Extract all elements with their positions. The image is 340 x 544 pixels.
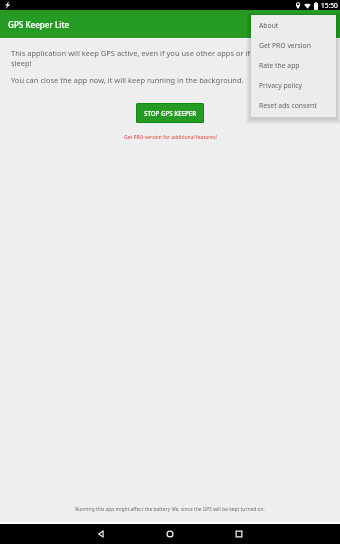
button[interactable]: Recent apps: [230, 525, 248, 543]
button[interactable]: Get PRO version: [251, 35, 336, 55]
staticText: Reset ads consent: [259, 101, 317, 110]
staticText: Rate the app: [259, 61, 300, 70]
button[interactable]: Back: [92, 525, 110, 543]
staticText: This application will keep GPS active, e…: [11, 48, 266, 69]
button[interactable]: Rate the app: [251, 55, 336, 75]
button[interactable]: Get PRO version for additional features!: [124, 134, 217, 141]
button[interactable]: Home: [161, 525, 179, 543]
staticText: Get PRO version: [259, 41, 311, 50]
button[interactable]: Privacy policy: [251, 75, 336, 95]
staticText: Running this app might affect the batter…: [75, 506, 265, 513]
button[interactable]: STOP GPS KEEPER: [136, 103, 204, 123]
staticText: About: [259, 21, 279, 30]
staticText: You can close the app now, it will keep …: [11, 75, 244, 85]
staticText: Privacy policy: [259, 81, 302, 90]
button[interactable]: Reset ads consent: [251, 95, 336, 115]
staticText: 15:50: [321, 1, 338, 10]
staticText: STOP GPS KEEPER: [144, 109, 197, 117]
button[interactable]: About: [251, 15, 336, 35]
staticText: GPS Keeper Lite: [8, 19, 70, 30]
